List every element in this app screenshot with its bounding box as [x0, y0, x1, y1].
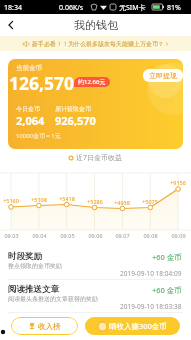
- staticText: 收入榜: [38, 322, 61, 331]
- staticText: +5108: [31, 196, 47, 203]
- staticText: 累计获取金币: [55, 105, 91, 113]
- staticText: 今日金币: [16, 105, 40, 113]
- staticText: 整点领取的金币奖励: [8, 262, 62, 270]
- staticText: +5286: [87, 198, 103, 205]
- staticText: 09.07: [115, 232, 130, 239]
- staticText: 立即提现: [149, 71, 177, 80]
- staticText: 09.03: [4, 232, 19, 239]
- staticText: +60 金币: [152, 285, 182, 295]
- button[interactable]: 时段奖励: [0, 247, 191, 280]
- staticText: 2019-09-10 18:03:38: [120, 302, 182, 311]
- button[interactable]: Back: [0, 14, 22, 36]
- staticText: +5160: [3, 197, 19, 204]
- staticText: 09.08: [143, 232, 158, 239]
- staticText: 我的钱包: [74, 18, 118, 32]
- staticText: 新手必看！！为什么很多版友每天能赚上万金币？: [32, 40, 164, 48]
- button[interactable]: 晒收入赚300金币: [85, 317, 180, 335]
- staticText: 926,570: [55, 113, 96, 128]
- button[interactable]: 阅读推送文章: [0, 280, 191, 313]
- staticText: 晒收入赚300金币: [109, 321, 167, 331]
- staticText: 126,570: [9, 71, 75, 95]
- button[interactable]: 新手必看！！为什么很多版友每天能赚上万金币？: [0, 36, 191, 51]
- staticText: 阅读推送文章: [8, 284, 59, 295]
- staticText: 09.06: [88, 232, 103, 239]
- staticText: 近7日金币收益: [76, 153, 123, 163]
- staticText: 18:34: [4, 3, 22, 13]
- staticText: +5075: [142, 198, 158, 205]
- staticText: 81%: [167, 3, 181, 13]
- staticText: 0.06K/s: [59, 3, 84, 13]
- staticText: 10000金币＝1元: [16, 132, 61, 140]
- staticText: +5418: [59, 195, 75, 202]
- staticText: +60 金币: [152, 252, 182, 262]
- staticText: 09.09: [171, 232, 186, 239]
- staticText: +9156: [170, 179, 186, 186]
- button[interactable]: 立即提现: [143, 69, 183, 82]
- staticText: 09.05: [60, 232, 75, 239]
- staticText: +4938: [114, 199, 130, 206]
- button[interactable]: 收入榜: [11, 317, 78, 335]
- staticText: 2,064: [16, 113, 45, 128]
- staticText: 2019-09-10 18:04:09: [120, 269, 182, 278]
- staticText: 约12.66元: [78, 78, 106, 86]
- staticText: 09.04: [32, 232, 47, 239]
- staticText: 时段奖励: [8, 251, 42, 262]
- staticText: 阅读最头条推送的文章获得的奖励: [8, 295, 98, 303]
- staticText: 无SIM卡: [119, 3, 146, 13]
- staticText: 当前金币: [16, 64, 42, 72]
